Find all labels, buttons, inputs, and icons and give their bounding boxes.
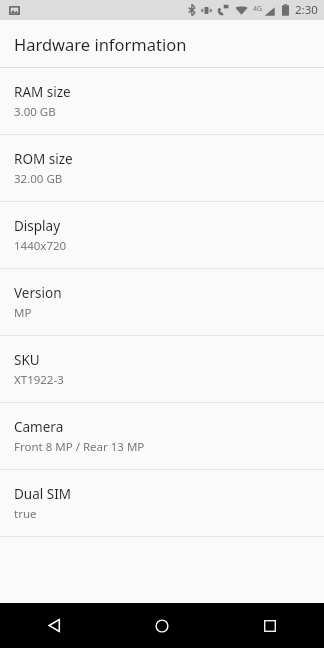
button[interactable]: Recent apps <box>216 603 324 648</box>
staticText: 32.00 GB <box>14 171 63 187</box>
button[interactable]: SKU <box>0 336 324 402</box>
staticText: RAM size <box>14 83 71 101</box>
button[interactable]: Back <box>0 603 108 648</box>
staticText: 3.00 GB <box>14 104 56 120</box>
staticText: XT1922-3 <box>14 372 64 388</box>
staticText: Hardware information <box>14 33 187 55</box>
staticText: Camera <box>14 418 64 436</box>
staticText: MP <box>14 305 32 321</box>
button[interactable]: RAM size <box>0 68 324 134</box>
staticText: 4G <box>253 4 263 14</box>
staticText: true <box>14 506 37 522</box>
button[interactable]: Camera <box>0 403 324 469</box>
staticText: 1440x720 <box>14 238 67 254</box>
staticText: Front 8 MP / Rear 13 MP <box>14 439 145 455</box>
button[interactable]: Home <box>108 603 216 648</box>
staticText: Version <box>14 284 62 302</box>
button[interactable]: Version <box>0 269 324 335</box>
button[interactable]: ROM size <box>0 135 324 201</box>
button[interactable]: Dual SIM <box>0 470 324 536</box>
staticText: Dual SIM <box>14 485 71 503</box>
staticText: SKU <box>14 351 40 369</box>
staticText: ROM size <box>14 150 73 168</box>
staticText: Display <box>14 217 61 235</box>
staticText: 2:30 <box>295 2 318 18</box>
button[interactable]: Display <box>0 202 324 268</box>
